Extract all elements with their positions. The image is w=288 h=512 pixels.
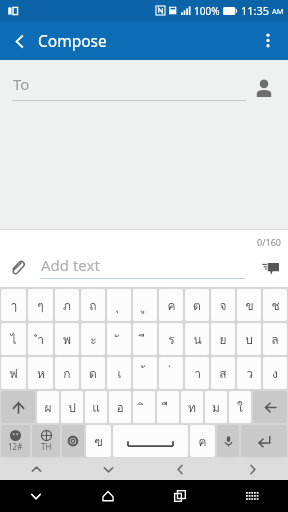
staticText: ว [246, 364, 253, 383]
staticText: ค [167, 296, 176, 315]
button[interactable]: ส [211, 357, 235, 389]
staticText: ก [63, 364, 71, 383]
button[interactable]: ก [55, 357, 79, 389]
staticText: ำ [37, 330, 44, 349]
staticText: ด [89, 364, 97, 383]
staticText: พ [63, 330, 71, 349]
button[interactable]: ห [28, 357, 53, 389]
button[interactable]: Switch keyboard [216, 480, 288, 512]
button[interactable]: ุ [107, 289, 131, 321]
button[interactable]: พ [55, 323, 79, 355]
staticText: ข [245, 296, 254, 315]
button[interactable]: ด [81, 357, 105, 389]
button[interactable]: ิ [133, 391, 155, 423]
button[interactable]: ต [185, 289, 209, 321]
button[interactable]: Send [256, 253, 284, 281]
button[interactable]: ม [205, 391, 227, 423]
button[interactable]: ช [263, 289, 287, 321]
button[interactable]: ำ [28, 323, 53, 355]
button[interactable]: น [185, 323, 209, 355]
button[interactable]: แ [85, 391, 107, 423]
button[interactable]: ่ [159, 357, 183, 389]
button[interactable]: จ [211, 289, 235, 321]
staticText: ร [168, 330, 175, 349]
button[interactable]: ว [237, 357, 261, 389]
button[interactable]: Space [113, 425, 188, 457]
staticText: 12# [8, 441, 23, 452]
button[interactable]: ฟ [1, 357, 26, 389]
staticText: ไ [10, 330, 17, 349]
button[interactable]: ค [159, 289, 183, 321]
button[interactable]: Down [72, 458, 144, 480]
staticText: ย [219, 330, 227, 349]
button[interactable]: ใ [229, 391, 251, 423]
staticText: ห [37, 364, 45, 383]
staticText: 100% [194, 4, 220, 18]
button[interactable]: บ [237, 323, 261, 355]
staticText: 0/160 [257, 236, 281, 248]
staticText: ๆ [37, 296, 44, 315]
staticText: ใ [237, 398, 243, 417]
button[interactable]: ล [263, 323, 287, 355]
button[interactable]: ี [133, 323, 157, 355]
button[interactable]: ไ [1, 323, 26, 355]
button[interactable]: ป [61, 391, 83, 423]
button[interactable]: Voice input [217, 425, 239, 457]
button[interactable]: Enter [241, 425, 287, 457]
button[interactable]: ู [133, 289, 157, 321]
button[interactable]: ั [107, 323, 131, 355]
button[interactable]: Recent apps [144, 480, 216, 512]
staticText: น [193, 330, 202, 349]
staticText: 11:35 [241, 3, 270, 18]
button[interactable]: ย [211, 323, 235, 355]
staticText: ะ [90, 330, 97, 349]
staticText: อ [116, 398, 124, 417]
button[interactable]: Home [72, 480, 144, 512]
button[interactable]: ื [157, 391, 179, 423]
button[interactable]: ฅ [190, 425, 215, 457]
button[interactable]: ฃ [86, 425, 111, 457]
button[interactable]: Backspace [253, 391, 287, 423]
staticText: ส [219, 364, 227, 383]
button[interactable]: ๆ [28, 289, 53, 321]
staticText: จ [219, 296, 227, 315]
button[interactable]: ร [159, 323, 183, 355]
button[interactable]: ท [181, 391, 203, 423]
staticText: แ [92, 398, 100, 417]
staticText: ท [188, 398, 196, 417]
staticText: ง [272, 364, 278, 383]
staticText: ถ [89, 296, 97, 315]
staticText: TH [41, 441, 52, 452]
button[interactable]: Back [0, 22, 38, 60]
button[interactable]: More options [248, 21, 288, 60]
button[interactable]: Change language [32, 425, 60, 457]
button[interactable]: ผ [37, 391, 59, 423]
button[interactable]: ๅ [1, 289, 26, 321]
button[interactable]: Attach [4, 254, 30, 280]
button[interactable]: Right [216, 458, 288, 480]
button[interactable]: ง [263, 357, 287, 389]
button[interactable]: ถ [81, 289, 105, 321]
button[interactable]: Left [144, 458, 216, 480]
button[interactable]: Hide keyboard [0, 480, 72, 512]
staticText: AM [272, 6, 284, 16]
button[interactable]: Shift [1, 391, 35, 423]
staticText: บ [245, 330, 253, 349]
button[interactable]: Symbols [1, 425, 30, 457]
button[interactable]: ้ [133, 357, 157, 389]
button[interactable]: ะ [81, 323, 105, 355]
staticText: ม [212, 398, 220, 417]
button[interactable]: อ [109, 391, 131, 423]
button[interactable]: ข [237, 289, 261, 321]
staticText: ต [193, 296, 201, 315]
staticText: ผ [44, 398, 52, 417]
button[interactable]: า [185, 357, 209, 389]
staticText: ภ [63, 296, 71, 315]
button[interactable]: Up [0, 458, 72, 480]
staticText: ฃ [94, 432, 103, 451]
button[interactable]: ภ [55, 289, 79, 321]
button[interactable]: Pick contact [249, 73, 279, 103]
button[interactable]: เ [107, 357, 131, 389]
staticText: ฟ [9, 364, 18, 383]
button[interactable]: Keyboard settings [62, 425, 84, 457]
